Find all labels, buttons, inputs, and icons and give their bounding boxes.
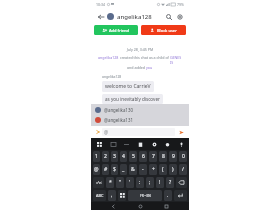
staticText: _ xyxy=(122,166,125,173)
staticText: Add friend xyxy=(109,28,130,33)
button[interactable]: Voice xyxy=(176,139,186,149)
button[interactable]: * xyxy=(106,177,114,188)
staticText: 5 xyxy=(132,153,135,160)
button[interactable]: 8 xyxy=(159,151,167,162)
button[interactable]: 0 xyxy=(179,151,187,162)
staticText: angelika128 xyxy=(102,74,122,79)
button[interactable]: Recents xyxy=(163,203,170,210)
button[interactable]: ? xyxy=(166,177,174,188)
button[interactable]: 7 xyxy=(149,151,157,162)
staticText: * xyxy=(109,179,112,186)
button[interactable]: 2 xyxy=(102,151,109,162)
button[interactable]: Back xyxy=(110,203,117,210)
staticText: / xyxy=(182,166,184,173)
staticText: & xyxy=(131,166,135,173)
button[interactable]: @angelika130 xyxy=(91,105,189,115)
button[interactable]: ABC xyxy=(93,190,106,201)
button[interactable]: Search xyxy=(163,11,174,22)
button[interactable]: @ xyxy=(93,164,100,175)
staticText: created this chat as a child of xyxy=(119,55,170,60)
button[interactable]: Emoji xyxy=(118,190,126,201)
staticText: =\< xyxy=(96,180,102,185)
button[interactable]: Home xyxy=(137,203,144,210)
staticText: 0 xyxy=(182,153,185,160)
button[interactable]: as you inevitably discover xyxy=(105,96,160,102)
button[interactable]: Block user xyxy=(141,25,186,35)
button[interactable]: Theme xyxy=(162,139,172,149)
staticText: ? xyxy=(169,179,172,186)
staticText: @ xyxy=(104,129,109,135)
button[interactable]: $ xyxy=(111,164,118,175)
staticText: # xyxy=(104,166,108,173)
button[interactable]: 9 xyxy=(169,151,177,162)
button[interactable]: . xyxy=(164,190,172,201)
button[interactable]: Enter xyxy=(174,190,187,201)
button[interactable]: - xyxy=(139,164,147,175)
staticText: ; xyxy=(149,179,151,186)
button[interactable]: 6 xyxy=(139,151,147,162)
button[interactable]: Send xyxy=(177,128,186,137)
staticText: FR • EN xyxy=(140,194,151,198)
staticText: as you inevitably discover xyxy=(105,96,160,102)
button[interactable]: 5 xyxy=(129,151,137,162)
staticText: + xyxy=(152,166,155,173)
button[interactable]: Settings xyxy=(174,11,185,22)
staticText: and added xyxy=(127,65,146,70)
button[interactable]: " xyxy=(116,177,124,188)
button[interactable]: # xyxy=(102,164,109,175)
staticText: @angelika130 xyxy=(104,107,133,113)
button[interactable]: & xyxy=(129,164,137,175)
button[interactable]: FR • EN xyxy=(128,190,162,201)
button[interactable]: Backspace xyxy=(176,177,187,188)
button[interactable]: Back xyxy=(95,11,106,22)
staticText: ( xyxy=(162,166,164,173)
button[interactable]: 3 xyxy=(111,151,118,162)
button[interactable]: Apps xyxy=(94,139,104,149)
staticText: GENESIS xyxy=(170,55,182,65)
button[interactable]: @angelika131 xyxy=(91,115,189,125)
staticText: welcome to CarrieV xyxy=(105,83,151,90)
button[interactable]: : xyxy=(136,177,144,188)
button[interactable]: @ xyxy=(102,128,175,136)
button[interactable]: + xyxy=(149,164,157,175)
button[interactable]: , xyxy=(108,190,116,201)
staticText: - xyxy=(142,166,144,173)
staticText: ! xyxy=(159,179,161,186)
staticText: . xyxy=(167,192,169,199)
button[interactable]: ) xyxy=(169,164,177,175)
button[interactable]: Clipboard xyxy=(135,139,145,149)
staticText: 1 xyxy=(95,153,98,160)
button[interactable]: Translate xyxy=(121,139,131,149)
staticText: : xyxy=(139,179,141,186)
staticText: angelika128 xyxy=(117,13,152,21)
staticText: angelika128 xyxy=(98,55,119,60)
button[interactable]: ! xyxy=(156,177,164,188)
staticText: $ xyxy=(113,166,116,173)
button[interactable]: ( xyxy=(159,164,167,175)
staticText: you xyxy=(146,65,153,70)
button[interactable]: Attach xyxy=(94,128,102,136)
button[interactable]: =\< xyxy=(93,177,104,188)
staticText: 2 xyxy=(104,153,107,160)
staticText: ' xyxy=(129,179,131,186)
button[interactable]: 1 xyxy=(93,151,100,162)
button[interactable]: GIF xyxy=(108,139,118,149)
staticText: 7 xyxy=(152,153,155,160)
button[interactable]: 4 xyxy=(120,151,127,162)
button[interactable]: Settings xyxy=(149,139,159,149)
button[interactable]: ' xyxy=(126,177,134,188)
staticText: July 28, 3:45 PM xyxy=(91,47,189,52)
staticText: 3 xyxy=(113,153,116,160)
button[interactable]: / xyxy=(179,164,187,175)
staticText: @angelika131 xyxy=(104,117,133,123)
staticText: 8 xyxy=(162,153,165,160)
staticText: , xyxy=(111,192,113,199)
staticText: 10:34 xyxy=(96,2,105,7)
staticText: ABC xyxy=(96,193,104,198)
button[interactable]: _ xyxy=(120,164,127,175)
staticText: ) xyxy=(172,166,174,173)
button[interactable]: Add friend xyxy=(94,25,138,35)
button[interactable]: ; xyxy=(146,177,154,188)
staticText: 9 xyxy=(172,153,175,160)
button[interactable]: welcome to CarrieV xyxy=(105,83,151,90)
